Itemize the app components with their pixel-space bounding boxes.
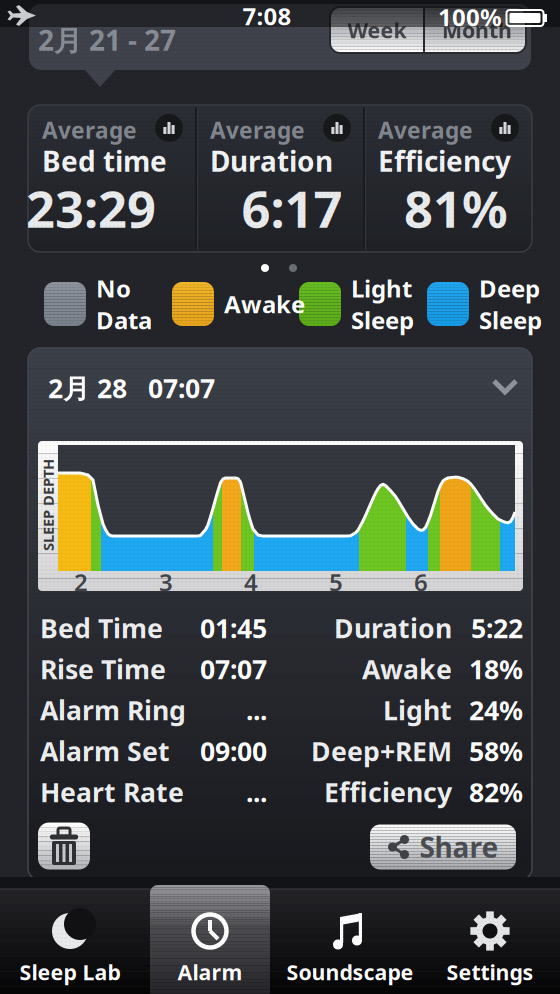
staticText: 01:45 bbox=[200, 610, 267, 646]
staticText: Rise Time bbox=[40, 651, 166, 687]
button[interactable]: Collapse entry bbox=[32, 348, 528, 418]
staticText: Share bbox=[419, 828, 498, 866]
staticText: Month bbox=[442, 16, 512, 44]
staticText: 2月 21 - 27 bbox=[38, 21, 176, 59]
staticText: 58% bbox=[469, 733, 523, 769]
staticText: 4 bbox=[244, 566, 258, 598]
staticText: 7:08 bbox=[242, 0, 291, 32]
staticText: 5 bbox=[329, 566, 343, 598]
staticText: 82% bbox=[469, 774, 523, 810]
staticText: 3 bbox=[159, 566, 173, 598]
staticText: Sleep bbox=[479, 304, 542, 336]
button[interactable]: Month bbox=[424, 7, 526, 53]
staticText: 100% bbox=[438, 1, 502, 33]
staticText: 5:22 bbox=[471, 610, 523, 646]
staticText: Soundscape bbox=[286, 958, 413, 986]
staticText: Light bbox=[383, 692, 452, 728]
staticText: Awake bbox=[362, 651, 452, 687]
staticText: Settings bbox=[446, 958, 533, 986]
staticText: Bed time bbox=[42, 142, 167, 180]
staticText: 23:29 bbox=[26, 174, 156, 242]
staticText: 07:07 bbox=[200, 651, 267, 687]
staticText: Alarm Set bbox=[40, 733, 170, 769]
staticText: 09:00 bbox=[200, 733, 267, 769]
staticText: ... bbox=[246, 692, 267, 728]
staticText: Deep bbox=[479, 272, 540, 304]
staticText: 6 bbox=[414, 566, 428, 598]
staticText: Deep+REM bbox=[311, 733, 452, 769]
staticText: Alarm bbox=[177, 958, 242, 986]
button[interactable]: Soundscape bbox=[290, 889, 410, 994]
staticText: Light bbox=[351, 272, 412, 304]
button[interactable]: Statistics bbox=[323, 114, 351, 142]
button[interactable]: Statistics bbox=[155, 114, 183, 142]
button[interactable]: Settings bbox=[430, 889, 550, 994]
staticText: Data bbox=[96, 304, 152, 336]
staticText: Duration bbox=[210, 142, 333, 180]
staticText: 81% bbox=[404, 174, 508, 242]
button[interactable]: Delete bbox=[38, 822, 90, 869]
staticText: ... bbox=[246, 774, 267, 810]
staticText: Sleep Lab bbox=[19, 958, 120, 986]
button[interactable]: Week bbox=[330, 7, 424, 53]
button[interactable]: Share bbox=[370, 824, 516, 869]
staticText: 2月 28 07:07 bbox=[48, 370, 215, 406]
staticText: Alarm Ring bbox=[40, 692, 186, 728]
staticText: Efficiency bbox=[324, 774, 452, 810]
button[interactable]: Statistics bbox=[491, 114, 519, 142]
staticText: Average bbox=[378, 115, 473, 145]
staticText: Week bbox=[347, 16, 406, 44]
staticText: Average bbox=[210, 115, 305, 145]
staticText: Duration bbox=[334, 610, 452, 646]
staticText: Awake bbox=[224, 288, 305, 320]
button[interactable]: Sleep Lab bbox=[10, 889, 130, 994]
staticText: Bed Time bbox=[40, 610, 163, 646]
staticText: SLEEP DEPTH bbox=[2, 495, 94, 515]
staticText: 24% bbox=[469, 692, 523, 728]
button[interactable]: Alarm bbox=[150, 889, 270, 994]
staticText: Sleep bbox=[351, 304, 414, 336]
staticText: Heart Rate bbox=[40, 774, 184, 810]
staticText: 2 bbox=[74, 566, 88, 598]
staticText: No bbox=[96, 272, 131, 304]
staticText: Efficiency bbox=[378, 142, 511, 180]
staticText: Average bbox=[42, 115, 137, 145]
staticText: 18% bbox=[469, 651, 523, 687]
staticText: 6:17 bbox=[241, 174, 342, 242]
